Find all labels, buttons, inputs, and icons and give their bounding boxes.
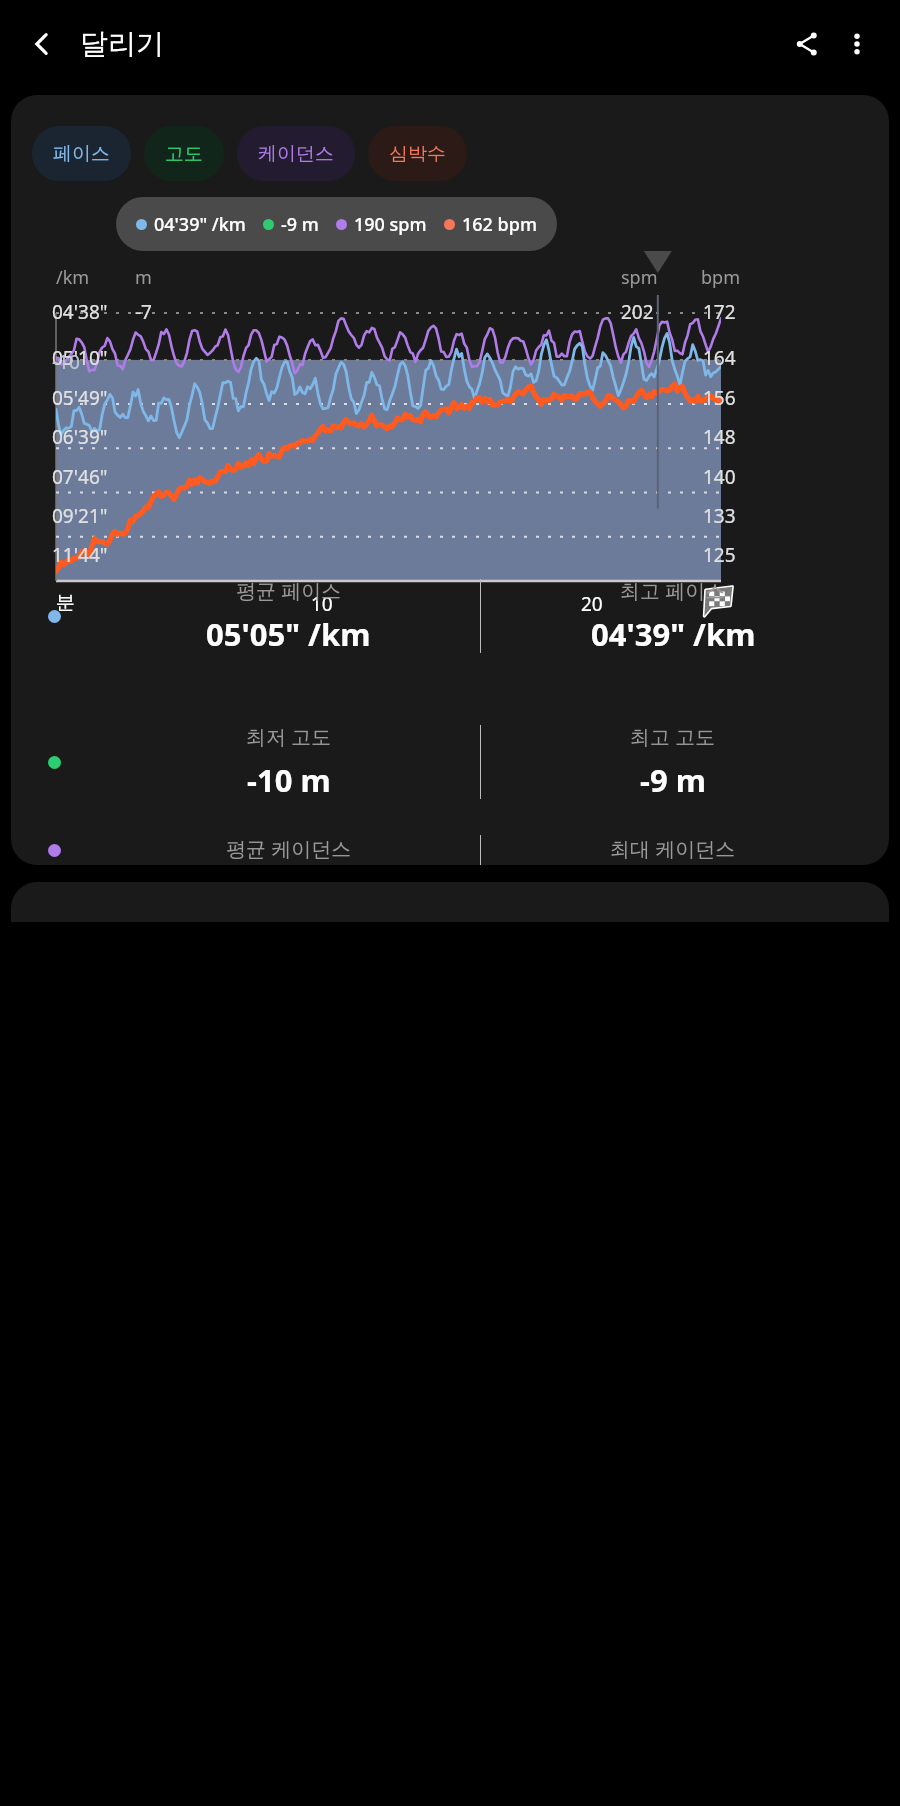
staticText: 10 [311, 591, 333, 617]
staticText: -10 [52, 349, 80, 375]
staticText: bpm [701, 265, 740, 290]
staticText: -9 m [640, 759, 706, 801]
staticText: 페이스 [53, 142, 110, 166]
staticText: 최고 페이스 [620, 577, 726, 604]
button[interactable]: 최저 고도 [11, 689, 889, 835]
staticText: 06'39" [52, 424, 108, 450]
staticText: 125 [703, 542, 736, 568]
button[interactable]: 평균 페이스 [11, 543, 889, 689]
staticText: 202 [621, 299, 654, 325]
button[interactable]: 평균 케이던스 [11, 835, 889, 865]
staticText: 최저 고도 [246, 723, 332, 750]
staticText: /km [56, 265, 90, 290]
staticText: 07'46" [52, 464, 108, 490]
button[interactable]: Share [782, 19, 832, 69]
staticText: 05'49" [52, 385, 108, 411]
staticText: 140 [703, 464, 736, 490]
staticText: 분 [56, 591, 75, 615]
staticText: 164 [703, 345, 736, 371]
staticText: -9 m [281, 212, 319, 237]
staticText: 162 bpm [462, 212, 537, 237]
staticText: 04'39" /km [591, 613, 756, 655]
staticText: 05'10" [52, 345, 108, 371]
staticText: 평균 케이던스 [226, 835, 352, 862]
button[interactable]: More options [832, 19, 882, 69]
staticText: 04'39" /km [154, 212, 246, 237]
staticText: 고도 [165, 142, 203, 166]
staticText: 케이던스 [258, 142, 334, 166]
staticText: 05'05" /km [206, 613, 371, 655]
staticText: spm [621, 265, 658, 290]
button[interactable]: 페이스 [32, 126, 131, 181]
staticText: 09'21" [52, 503, 108, 529]
button[interactable]: 케이던스 [237, 126, 355, 181]
staticText: 심박수 [389, 142, 446, 166]
staticText: 11'44" [52, 542, 108, 568]
staticText: 190 spm [354, 212, 427, 237]
staticText: m [135, 265, 152, 290]
staticText: -7 [135, 299, 152, 325]
staticText: 20 [581, 591, 603, 617]
staticText: 04'38" [52, 299, 108, 325]
staticText: 최대 케이던스 [610, 835, 736, 862]
button[interactable]: 고도 [144, 126, 224, 181]
staticText: 148 [703, 424, 736, 450]
staticText: 133 [703, 503, 736, 529]
staticText: -10 m [247, 759, 331, 801]
staticText: 평균 페이스 [236, 577, 342, 604]
staticText: 최고 고도 [630, 723, 716, 750]
button[interactable]: Back [18, 20, 66, 68]
button[interactable]: 심박수 [368, 126, 467, 181]
staticText: 156 [703, 385, 736, 411]
staticText: 달리기 [80, 26, 164, 61]
staticText: 172 [703, 299, 736, 325]
